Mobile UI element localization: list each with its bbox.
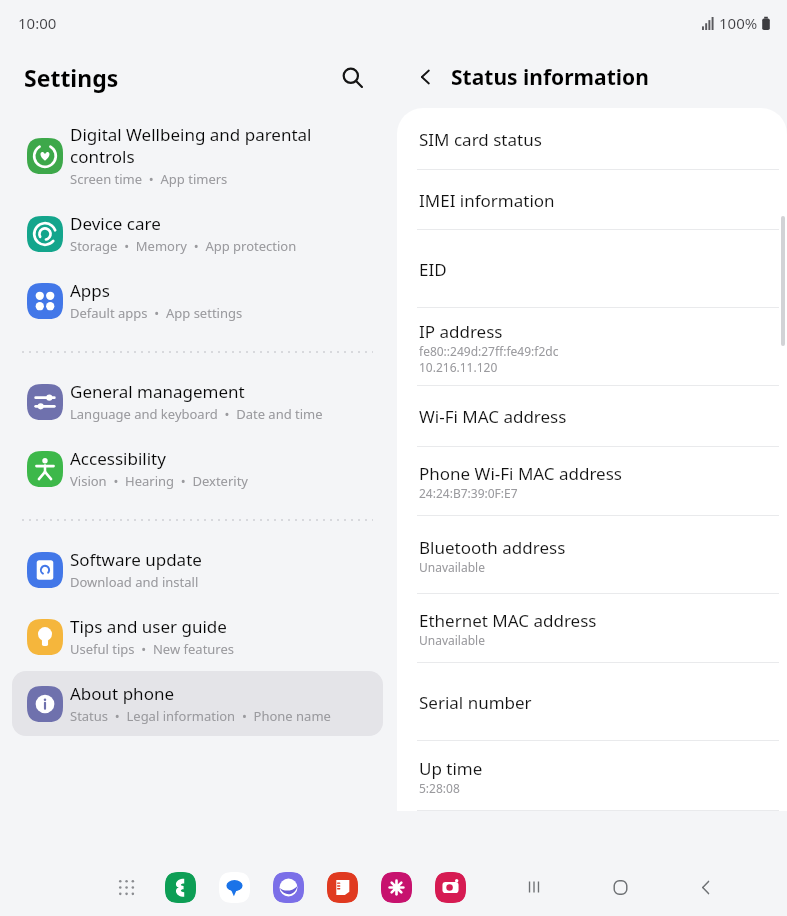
- staticText: fe80::249d:27ff:fe49:f2dc: [419, 343, 559, 359]
- button[interactable]: Digital Wellbeing and parental controls: [12, 112, 383, 199]
- button[interactable]: Bluetooth address: [397, 516, 787, 594]
- staticText: Ethernet MAC address: [419, 609, 597, 632]
- staticText: Unavailable: [419, 559, 485, 575]
- staticText: Unavailable: [419, 632, 485, 648]
- button[interactable]: Phone: [165, 872, 196, 903]
- button[interactable]: Apps: [12, 268, 383, 333]
- button[interactable]: Wi-Fi MAC address: [397, 386, 787, 447]
- button[interactable]: About phone: [12, 671, 383, 736]
- staticText: Up time: [419, 757, 483, 780]
- staticText: SIM card status: [419, 128, 542, 151]
- button[interactable]: Back: [409, 60, 443, 94]
- staticText: Storage • Memory • App protection: [70, 237, 297, 255]
- staticText: 10:00: [18, 13, 57, 33]
- staticText: General management: [70, 380, 245, 403]
- button[interactable]: Notes: [327, 872, 358, 903]
- button[interactable]: Search: [335, 60, 369, 94]
- staticText: Download and install: [70, 573, 199, 591]
- button[interactable]: IP address: [397, 308, 787, 386]
- staticText: Bluetooth address: [419, 536, 566, 559]
- button[interactable]: Camera: [435, 872, 466, 903]
- button[interactable]: Up time: [397, 741, 787, 811]
- button[interactable]: General management: [12, 369, 383, 434]
- button[interactable]: Ethernet MAC address: [397, 594, 787, 663]
- staticText: Screen time • App timers: [70, 170, 228, 188]
- button[interactable]: Messages: [219, 872, 250, 903]
- staticText: Device care: [70, 212, 161, 235]
- button[interactable]: SIM card status: [397, 108, 787, 170]
- staticText: Accessibility: [70, 447, 166, 470]
- staticText: About phone: [70, 682, 175, 705]
- button[interactable]: Gallery: [381, 872, 412, 903]
- staticText: Status information: [451, 63, 649, 92]
- button[interactable]: Recents: [515, 868, 553, 906]
- staticText: IMEI information: [419, 189, 555, 212]
- staticText: Phone Wi-Fi MAC address: [419, 462, 622, 485]
- button[interactable]: Serial number: [397, 663, 787, 741]
- button[interactable]: Accessibility: [12, 436, 383, 501]
- staticText: Language and keyboard • Date and time: [70, 405, 323, 423]
- staticText: IP address: [419, 320, 503, 343]
- button[interactable]: Tips and user guide: [12, 604, 383, 669]
- button[interactable]: IMEI information: [397, 170, 787, 230]
- button[interactable]: All apps: [112, 873, 142, 903]
- staticText: Wi-Fi MAC address: [419, 405, 567, 428]
- staticText: Useful tips • New features: [70, 640, 235, 658]
- staticText: 10.216.11.120: [419, 359, 498, 375]
- staticText: Status • Legal information • Phone name: [70, 707, 331, 725]
- button[interactable]: Device care: [12, 201, 383, 266]
- staticText: 24:24:B7:39:0F:E7: [419, 485, 518, 501]
- staticText: EID: [419, 258, 447, 281]
- staticText: Tips and user guide: [70, 615, 227, 638]
- staticText: Serial number: [419, 691, 532, 714]
- button[interactable]: EID: [397, 230, 787, 308]
- staticText: Vision • Hearing • Dexterity: [70, 472, 248, 490]
- staticText: Digital Wellbeing and parental controls: [70, 123, 312, 168]
- staticText: 5:28:08: [419, 780, 460, 796]
- staticText: 100%: [719, 13, 758, 33]
- staticText: Apps: [70, 279, 110, 302]
- button[interactable]: Internet: [273, 872, 304, 903]
- button[interactable]: Home: [601, 868, 639, 906]
- staticText: Software update: [70, 548, 202, 571]
- staticText: Default apps • App settings: [70, 304, 243, 322]
- button[interactable]: Software update: [12, 537, 383, 602]
- staticText: Settings: [24, 62, 119, 93]
- button[interactable]: Phone Wi-Fi MAC address: [397, 447, 787, 516]
- button[interactable]: Back: [687, 868, 725, 906]
